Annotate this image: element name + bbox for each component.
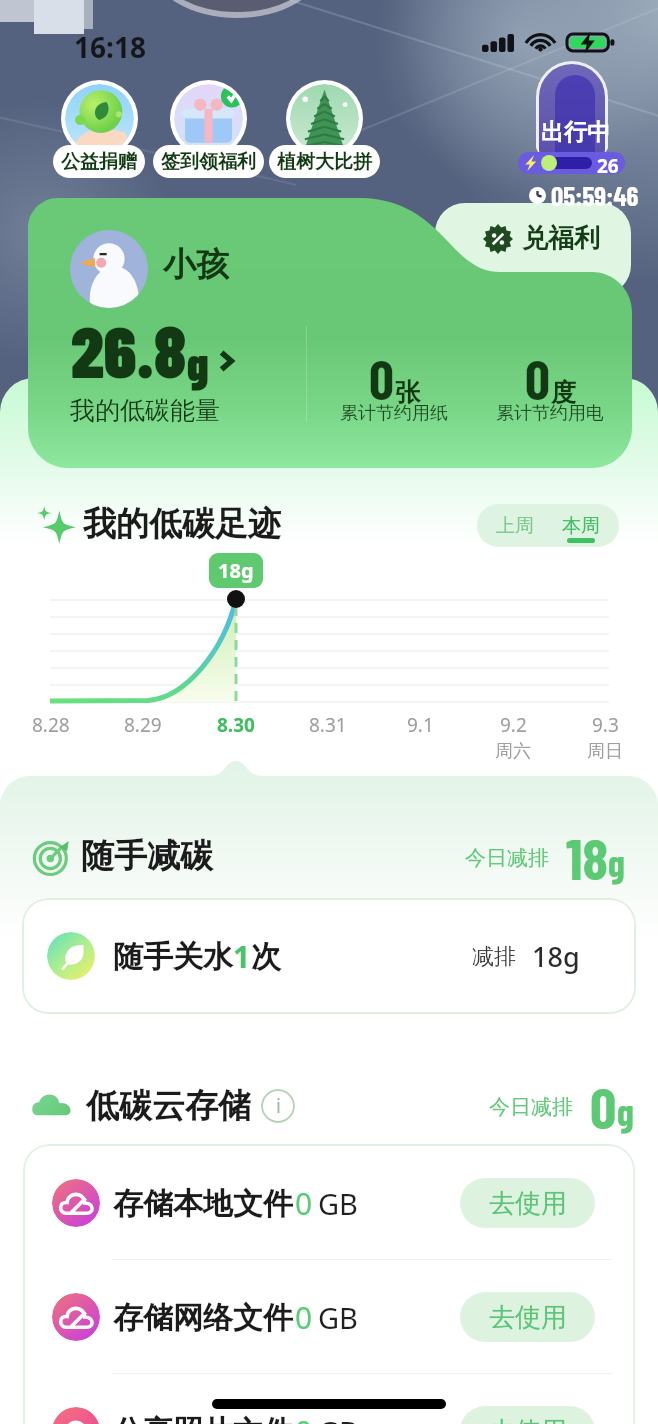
button[interactable]: 本周 <box>562 504 600 547</box>
staticText: 存储网络文件 <box>113 1299 293 1337</box>
staticText: 8.29 <box>124 712 162 738</box>
staticText: 8.28 <box>32 712 70 738</box>
staticText: 05:59:46 <box>551 179 639 211</box>
staticText: 0 <box>369 345 394 411</box>
staticText: 累计节约用纸 <box>340 402 448 425</box>
staticText: 16:18 <box>74 28 146 66</box>
button[interactable]: 存储网络文件 <box>23 1260 635 1374</box>
staticText: 张 <box>395 377 420 408</box>
staticText: 9.1 <box>407 712 434 738</box>
button[interactable]: 分享照片文件 <box>23 1374 635 1424</box>
staticText: 分享照片文件 <box>113 1413 293 1424</box>
button[interactable]: 26 <box>518 152 625 174</box>
button[interactable]: 上周 <box>496 504 534 547</box>
staticText: 兑福利 <box>522 222 600 255</box>
staticText: 存储本地文件 <box>113 1185 293 1223</box>
button[interactable]: 兑福利 <box>435 203 631 295</box>
staticText: 低碳云存储 <box>86 1085 251 1127</box>
staticText: g <box>608 839 625 885</box>
staticText: 1 <box>233 936 251 977</box>
staticText: 去使用 <box>489 1187 567 1220</box>
staticText: 签到领福利 <box>161 150 256 174</box>
button[interactable]: 公益捐赠 <box>39 80 159 178</box>
staticText: 本周 <box>562 514 600 538</box>
staticText: 今日减排 <box>489 1094 573 1120</box>
button[interactable]: 随手关水 <box>22 898 636 1014</box>
staticText: 出行中 <box>541 118 610 147</box>
button[interactable]: 去使用 <box>460 1406 595 1424</box>
button[interactable]: 存储本地文件 <box>23 1146 635 1260</box>
staticText: g <box>617 1088 634 1134</box>
staticText: 18g <box>532 938 580 975</box>
staticText: 0 <box>295 1297 313 1338</box>
staticText: GB <box>318 1298 358 1337</box>
staticText: 公益捐赠 <box>61 150 137 174</box>
staticText: 随手关水 <box>113 938 233 976</box>
staticText: 周日 <box>587 740 623 763</box>
staticText: 周六 <box>495 740 531 763</box>
staticText: 9.2 <box>500 712 527 738</box>
staticText: GB <box>318 1184 358 1223</box>
staticText: i <box>276 1093 281 1119</box>
staticText: 0 <box>590 1071 617 1141</box>
staticText: 我的低碳足迹 <box>83 503 281 545</box>
staticText: 0 <box>295 1411 313 1424</box>
staticText: 26.8 <box>71 307 187 392</box>
staticText: 今日减排 <box>465 845 549 871</box>
staticText: 8.31 <box>309 712 347 738</box>
staticText: 26 <box>597 153 619 174</box>
staticText: 减排 <box>472 943 516 971</box>
staticText: 8.30 <box>217 712 255 738</box>
staticText: 度 <box>551 377 576 408</box>
button[interactable]: Info <box>261 1089 295 1123</box>
staticText: 随手减碳 <box>81 835 213 877</box>
button[interactable]: 签到领福利 <box>148 80 268 178</box>
staticText: 次 <box>251 938 281 976</box>
staticText: 去使用 <box>489 1301 567 1334</box>
staticText: g <box>187 334 209 390</box>
staticText: 18 <box>566 822 608 892</box>
staticText: 植树大比拼 <box>277 150 372 174</box>
staticText: 18g <box>218 557 254 584</box>
button[interactable]: 去使用 <box>460 1292 595 1342</box>
staticText: 累计节约用电 <box>496 402 604 425</box>
staticText: GB <box>318 1412 358 1424</box>
staticText: 我的低碳能量 <box>70 395 220 426</box>
button[interactable]: 植树大比拼 <box>264 80 384 178</box>
staticText: 9.3 <box>592 712 619 738</box>
staticText: 上周 <box>496 514 534 538</box>
staticText: 0 <box>525 345 550 411</box>
staticText: 0 <box>295 1183 313 1224</box>
button[interactable]: 去使用 <box>460 1178 595 1228</box>
button[interactable]: 小孩 <box>28 198 632 468</box>
staticText: 小孩 <box>163 244 229 286</box>
button[interactable] <box>539 64 605 153</box>
staticText: 去使用 <box>489 1415 567 1424</box>
